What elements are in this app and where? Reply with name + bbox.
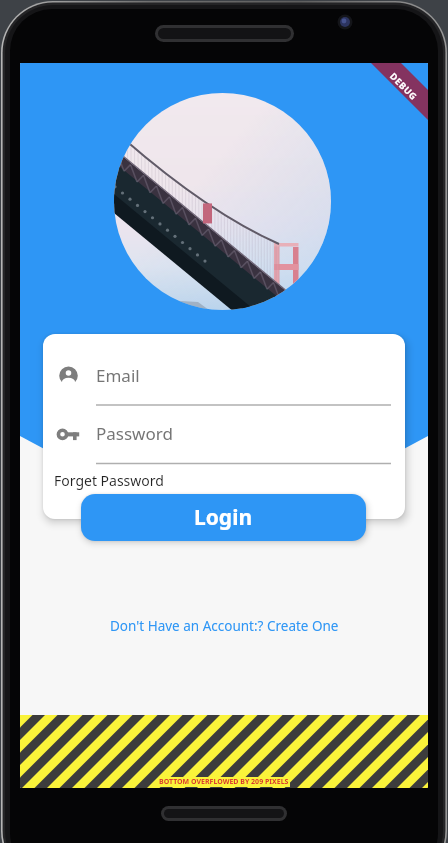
staticText: BOTTOM OVERFLOWED BY 209 PIXELS	[159, 777, 289, 787]
button[interactable]: Email	[96, 361, 391, 389]
button[interactable]: Don't Have an Account:? Create One	[20, 613, 428, 639]
staticText: DEBUG	[388, 70, 420, 102]
staticText: Email	[96, 364, 140, 387]
staticText: Forget Password	[54, 471, 164, 490]
staticText: Don't Have an Account:? Create One	[110, 617, 339, 635]
staticText: Login	[194, 503, 253, 532]
staticText: Password	[96, 422, 173, 445]
button[interactable]: Password	[96, 419, 391, 447]
button[interactable]: Login	[81, 494, 366, 541]
button[interactable]: Forget Password	[54, 469, 164, 491]
